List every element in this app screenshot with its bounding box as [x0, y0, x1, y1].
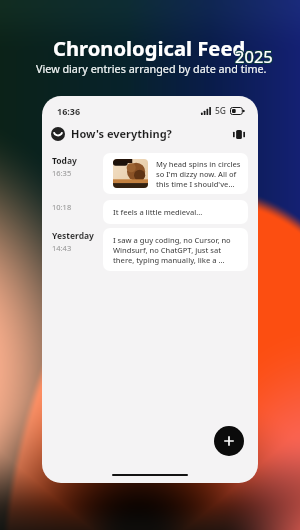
button[interactable]: I saw a guy coding, no Cursor, no Windsu… [103, 228, 248, 271]
staticText: 2025 [236, 45, 274, 67]
staticText: 2025 [235, 44, 273, 66]
button[interactable]: My head spins in circles so I'm dizzy no… [103, 153, 248, 194]
staticText: View diary entries arranged by date and … [36, 61, 267, 76]
staticText: Today [52, 155, 77, 167]
staticText: Chronological Feed [53, 34, 246, 62]
staticText: 2025 [236, 46, 274, 68]
staticText: 2025 [234, 45, 272, 67]
staticText: 2025 [235, 46, 273, 68]
staticText: 14:43 [52, 243, 72, 253]
staticText: 10:18 [52, 202, 72, 212]
staticText: 16:35 [52, 168, 72, 178]
staticText: It feels a little medieval… [113, 207, 238, 217]
staticText: Yesterday [52, 230, 94, 242]
button[interactable]: Gallery view [231, 126, 247, 142]
staticText: 2025 [236, 44, 274, 66]
staticText: 16:36 [57, 105, 81, 117]
staticText: 2025 [235, 45, 273, 67]
staticText: I saw a guy coding, no Cursor, no Windsu… [113, 235, 237, 265]
staticText: How's everything? [71, 126, 172, 141]
button[interactable]: Profile [51, 127, 65, 141]
button[interactable]: Add entry [214, 426, 244, 456]
staticText: 2025 [234, 44, 272, 66]
button[interactable]: It feels a little medieval… [103, 200, 248, 224]
staticText: My head spins in circles so I'm dizzy no… [156, 159, 242, 189]
staticText: 2025 [234, 46, 272, 68]
staticText: 5G [215, 105, 227, 117]
